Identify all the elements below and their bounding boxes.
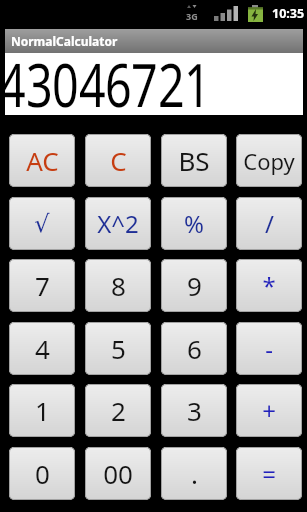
button[interactable]: 3 xyxy=(161,384,227,437)
staticText: 9 xyxy=(187,268,202,303)
staticText: 4 xyxy=(35,331,50,366)
staticText: Copy xyxy=(243,146,295,176)
staticText: 7 xyxy=(35,268,50,303)
staticText: 2 xyxy=(111,393,126,428)
staticText: 1 xyxy=(35,393,50,428)
button[interactable]: . xyxy=(161,447,227,500)
staticText: 3 xyxy=(187,393,202,428)
staticText: 0 xyxy=(35,456,50,491)
button[interactable]: 1 xyxy=(9,384,75,437)
staticText: 3G xyxy=(186,10,198,22)
staticText: 8 xyxy=(111,268,126,303)
button[interactable]: AC xyxy=(9,134,75,187)
button[interactable]: * xyxy=(236,259,302,312)
button[interactable]: % xyxy=(161,197,227,250)
button[interactable]: √ xyxy=(9,197,75,250)
staticText: 00 xyxy=(103,456,133,491)
button[interactable]: 4 xyxy=(9,322,75,375)
staticText: 10:35 xyxy=(272,5,305,22)
staticText: AC xyxy=(26,143,59,178)
staticText: + xyxy=(262,394,276,427)
button[interactable]: / xyxy=(236,197,302,250)
staticText: 5 xyxy=(111,331,126,366)
button[interactable]: 0 xyxy=(9,447,75,500)
staticText: % xyxy=(184,207,204,240)
button[interactable]: 9 xyxy=(161,259,227,312)
button[interactable]: = xyxy=(236,447,302,500)
staticText: NormalCalculator xyxy=(11,33,118,49)
button[interactable]: 6 xyxy=(161,322,227,375)
button[interactable]: 2 xyxy=(85,384,151,437)
button[interactable]: BS xyxy=(161,134,227,187)
button[interactable]: + xyxy=(236,384,302,437)
staticText: C xyxy=(110,143,127,178)
button[interactable]: X^2 xyxy=(85,197,151,250)
staticText: BS xyxy=(178,143,210,178)
button[interactable]: - xyxy=(236,322,302,375)
button[interactable]: 8 xyxy=(85,259,151,312)
staticText: * xyxy=(262,269,276,302)
staticText: = xyxy=(262,457,276,490)
button[interactable]: Copy xyxy=(236,134,302,187)
button[interactable]: C xyxy=(85,134,151,187)
staticText: √ xyxy=(34,210,50,238)
staticText: / xyxy=(265,207,274,240)
button[interactable]: 5 xyxy=(85,322,151,375)
button[interactable]: 7 xyxy=(9,259,75,312)
button[interactable]: 00 xyxy=(85,447,151,500)
staticText: X^2 xyxy=(97,207,139,240)
staticText: . xyxy=(191,456,198,491)
staticText: 6 xyxy=(187,331,202,366)
staticText: - xyxy=(265,332,273,365)
